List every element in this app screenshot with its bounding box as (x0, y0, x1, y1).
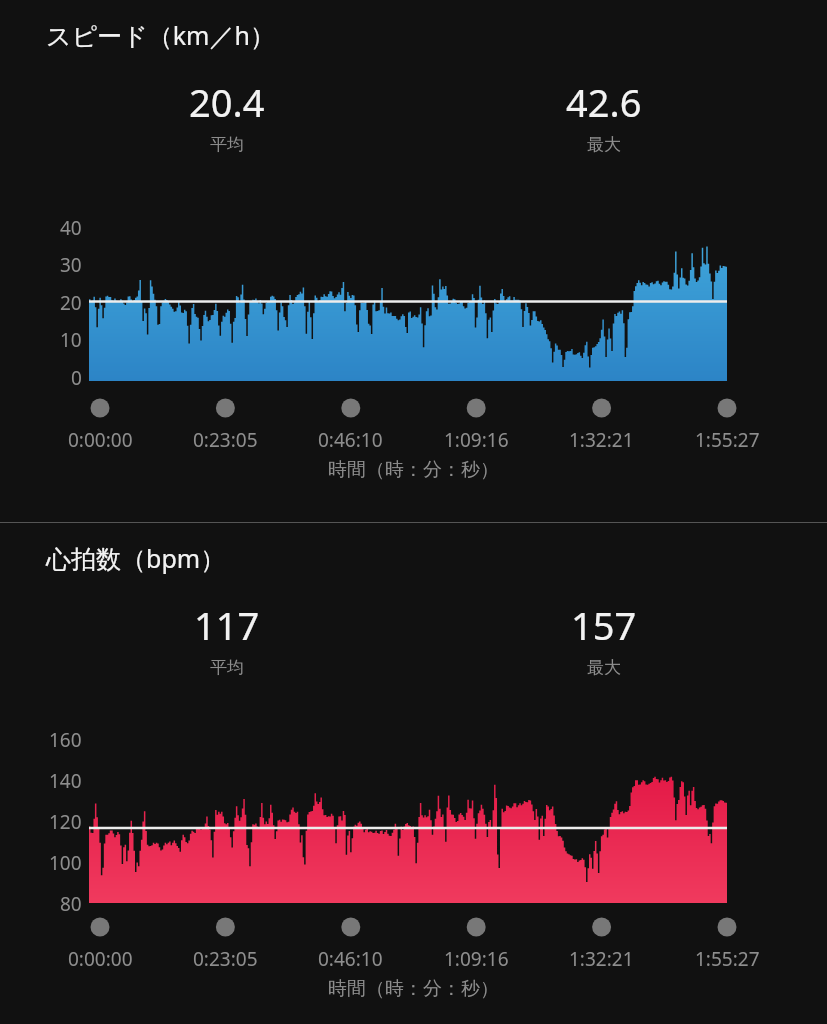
staticText: 30 (60, 252, 82, 278)
staticText: 最大 (587, 657, 621, 678)
staticText: 1:32:21 (569, 427, 634, 453)
staticText: 40 (60, 215, 82, 241)
staticText: 20.4 (189, 76, 265, 128)
staticText: 1:32:21 (569, 946, 634, 972)
button[interactable]: 心拍数（bpm） (0, 523, 827, 1024)
staticText: 時間（時：分：秒） (328, 458, 499, 482)
staticText: 160 (49, 727, 82, 753)
button[interactable]: スピード（km／h） (0, 0, 827, 522)
staticText: 100 (49, 850, 82, 876)
staticText: 0:00:00 (68, 427, 133, 453)
staticText: 平均 (210, 657, 244, 678)
staticText: 117 (194, 599, 260, 651)
staticText: 20 (60, 290, 82, 316)
staticText: 最大 (587, 134, 621, 155)
staticText: スピード（km／h） (46, 18, 275, 52)
staticText: 42.6 (566, 76, 642, 128)
staticText: 157 (571, 599, 637, 651)
staticText: 10 (60, 327, 82, 353)
staticText: 1:09:16 (444, 427, 509, 453)
staticText: 1:09:16 (444, 946, 509, 972)
staticText: 0:00:00 (68, 946, 133, 972)
staticText: 0:46:10 (318, 946, 383, 972)
staticText: 平均 (210, 134, 244, 155)
staticText: 0:23:05 (193, 946, 258, 972)
staticText: 0 (71, 365, 82, 391)
staticText: 0:23:05 (193, 427, 258, 453)
staticText: 140 (49, 768, 82, 794)
staticText: 1:55:27 (695, 946, 760, 972)
staticText: 0:46:10 (318, 427, 383, 453)
staticText: 80 (60, 891, 82, 917)
staticText: 心拍数（bpm） (46, 541, 226, 575)
staticText: 1:55:27 (695, 427, 760, 453)
staticText: 時間（時：分：秒） (328, 977, 499, 1001)
staticText: 120 (49, 809, 82, 835)
